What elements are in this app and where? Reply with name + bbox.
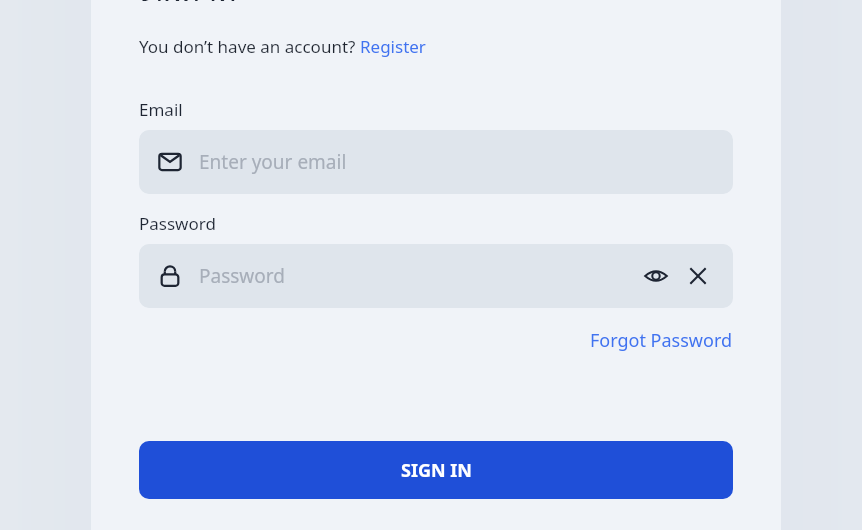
button[interactable]: Forgot Password	[590, 328, 733, 353]
staticText: Password	[199, 263, 285, 289]
staticText: Sign In	[139, 0, 237, 1]
button[interactable]: Enter your email	[139, 130, 733, 194]
button[interactable]: Show password	[639, 259, 673, 293]
staticText: You don’t have an account?	[139, 35, 360, 58]
staticText: Register	[360, 35, 426, 58]
button[interactable]: Password	[139, 244, 733, 308]
staticText: Password	[139, 212, 216, 235]
button[interactable]: Clear password	[681, 259, 715, 293]
staticText: Email	[139, 98, 183, 121]
button[interactable]: SIGN IN	[139, 441, 733, 499]
staticText: SIGN IN	[401, 458, 472, 483]
button[interactable]: Register	[360, 35, 426, 58]
staticText: Forgot Password	[590, 328, 733, 353]
staticText: Enter your email	[199, 149, 347, 175]
